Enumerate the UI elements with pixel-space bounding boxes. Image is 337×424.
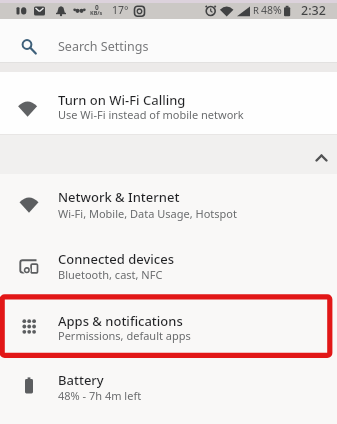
staticText: 2:32 bbox=[301, 2, 326, 19]
staticText: Battery bbox=[58, 371, 104, 389]
button[interactable]: Connected devices bbox=[0, 236, 337, 298]
staticText: Use Wi-Fi instead of mobile network bbox=[58, 107, 244, 122]
staticText: Connected devices bbox=[58, 250, 175, 268]
staticText: 48% bbox=[261, 3, 282, 17]
staticText: 0 bbox=[95, 3, 99, 12]
staticText: Wi-Fi, Mobile, Data Usage, Hotspot bbox=[58, 206, 237, 221]
staticText: Network & Internet bbox=[58, 188, 180, 206]
staticText: Turn on Wi-Fi Calling bbox=[58, 91, 186, 109]
staticText: Bluetooth, cast, NFC bbox=[58, 267, 163, 282]
button[interactable]: Apps & notifications bbox=[0, 298, 337, 360]
staticText: Search Settings bbox=[58, 38, 149, 55]
staticText: 17° bbox=[112, 3, 129, 17]
button[interactable]: Network & Internet bbox=[0, 174, 337, 236]
staticText: Permissions, default apps bbox=[58, 328, 191, 343]
staticText: R bbox=[253, 4, 259, 17]
button[interactable]: Search Settings bbox=[0, 19, 337, 63]
button[interactable]: Battery bbox=[0, 360, 337, 422]
staticText: Apps & notifications bbox=[58, 312, 183, 330]
button[interactable]: Turn on Wi-Fi Calling bbox=[0, 72, 337, 135]
button[interactable] bbox=[0, 135, 337, 174]
staticText: KB/s bbox=[90, 9, 103, 16]
staticText: 48% - 7h 4m left bbox=[58, 388, 142, 403]
